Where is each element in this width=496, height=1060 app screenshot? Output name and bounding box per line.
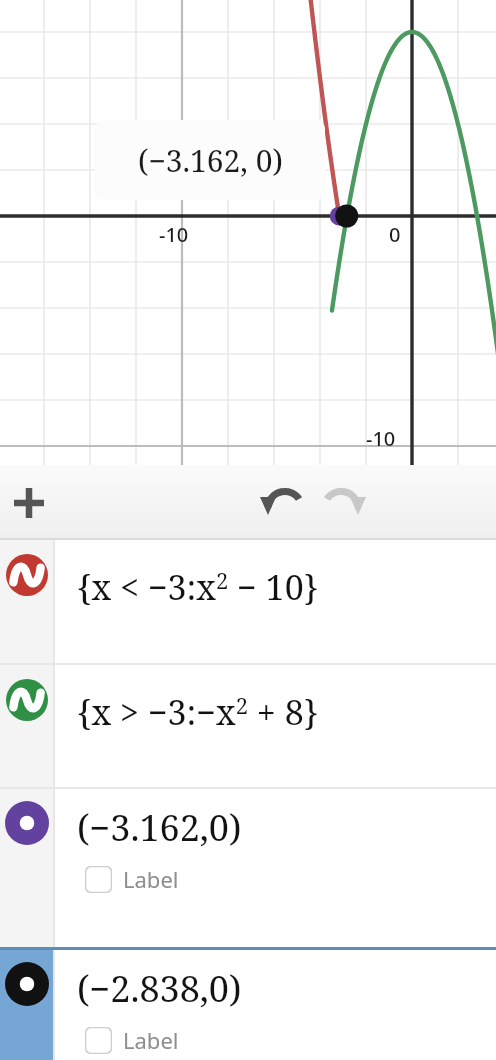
button[interactable]: Graph canvas <box>0 0 496 465</box>
button[interactable]: {x < −3:x2 − 10} <box>0 540 496 663</box>
staticText: 0 <box>389 221 401 248</box>
button[interactable]: (−2.838,0) <box>0 950 496 1060</box>
staticText: (−3.162, 0) <box>138 140 283 181</box>
staticText: -10 <box>366 425 396 452</box>
staticText: {x < −3:x2 − 10} <box>77 564 319 610</box>
staticText: {x > −3:−x2 + 8} <box>77 689 319 735</box>
button[interactable]: {x > −3:−x2 + 8} <box>0 665 496 787</box>
staticText: -10 <box>159 221 189 248</box>
button[interactable]: Undo <box>258 479 306 527</box>
button[interactable]: Label <box>85 1025 179 1055</box>
staticText: Label <box>123 1025 179 1055</box>
button[interactable]: (−3.162,0) <box>0 789 496 947</box>
staticText: (−2.838,0) <box>77 964 242 1013</box>
staticText: Label <box>123 864 179 894</box>
button[interactable]: Redo <box>320 479 368 527</box>
button[interactable]: Add expression <box>6 480 52 526</box>
button[interactable]: Label <box>85 864 179 894</box>
button[interactable]: (−3.162, 0) <box>95 120 325 200</box>
staticText: (−3.162,0) <box>77 803 242 852</box>
